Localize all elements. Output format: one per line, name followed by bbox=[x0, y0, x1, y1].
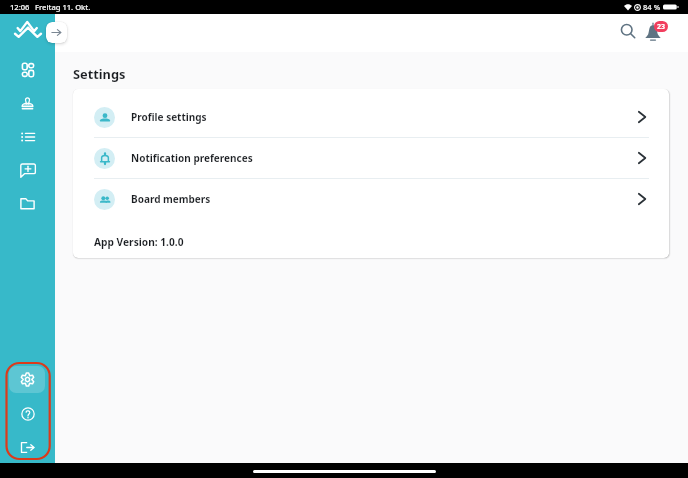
button[interactable]: Notification preferences bbox=[73, 138, 669, 178]
staticText: Freitag 11. Okt. bbox=[35, 2, 91, 12]
button[interactable]: Settings bbox=[9, 366, 45, 393]
staticText: Settings bbox=[73, 65, 126, 82]
button[interactable]: Search bbox=[614, 17, 641, 44]
button[interactable]: Profile settings bbox=[73, 97, 669, 137]
button[interactable]: Approvals bbox=[10, 86, 45, 121]
staticText: Notification preferences bbox=[131, 151, 253, 165]
staticText: App Version: 1.0.0 bbox=[94, 235, 184, 249]
staticText: Board members bbox=[131, 192, 211, 206]
staticText: 84 % bbox=[643, 2, 661, 12]
staticText: 12:06 bbox=[10, 2, 30, 12]
button[interactable]: New message bbox=[10, 153, 45, 188]
staticText: Profile settings bbox=[131, 110, 207, 124]
button[interactable]: Documents bbox=[10, 186, 45, 221]
staticText: 23 bbox=[657, 22, 666, 32]
button[interactable]: Log out bbox=[10, 430, 45, 465]
button[interactable]: Tasks bbox=[10, 119, 45, 154]
button[interactable]: Board members bbox=[73, 179, 669, 219]
button[interactable]: Help bbox=[10, 396, 45, 431]
button[interactable]: Home bbox=[10, 14, 45, 49]
button[interactable]: Notifications bbox=[640, 17, 667, 44]
button[interactable]: Expand navigation bbox=[46, 22, 67, 43]
button[interactable]: Dashboard bbox=[10, 52, 45, 87]
